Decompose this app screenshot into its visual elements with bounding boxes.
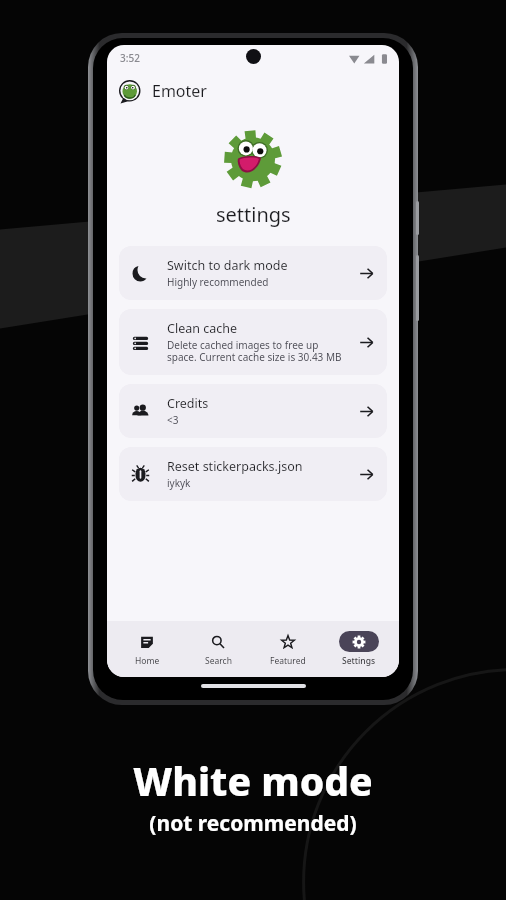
staticText: Search (205, 655, 232, 667)
staticText: iykyk (167, 476, 191, 490)
button[interactable]: Credits (119, 384, 387, 438)
staticText: Clean cache (167, 320, 237, 337)
button[interactable]: Featured (257, 627, 319, 671)
staticText: Highly recommended (167, 275, 269, 289)
staticText: Home (135, 655, 160, 667)
staticText: <3 (167, 413, 179, 427)
button[interactable]: Switch to dark mode (119, 246, 387, 300)
button[interactable]: Home (116, 627, 178, 671)
staticText: Credits (167, 395, 209, 412)
staticText: Settings (342, 655, 376, 667)
staticText: Reset stickerpacks.json (167, 458, 303, 475)
staticText: Emoter (152, 80, 207, 102)
staticText: White mode (133, 754, 373, 807)
other: Emoter logo (118, 79, 143, 104)
staticText: Delete cached images to free up space. C… (167, 338, 348, 364)
staticText: Switch to dark mode (167, 257, 288, 274)
button[interactable]: Settings (328, 627, 390, 671)
button[interactable]: Clean cache (119, 309, 387, 375)
button[interactable]: Search (187, 627, 249, 671)
staticText: (not recommended) (149, 809, 357, 838)
staticText: settings (216, 201, 291, 228)
button[interactable]: Reset stickerpacks.json (119, 447, 387, 501)
staticText: 3:52 (120, 51, 140, 65)
staticText: Featured (270, 655, 306, 667)
